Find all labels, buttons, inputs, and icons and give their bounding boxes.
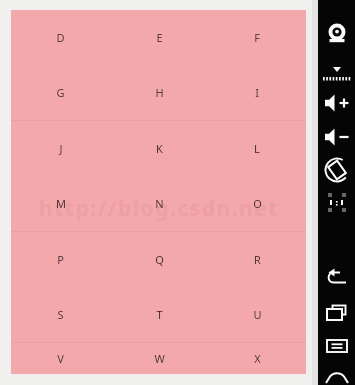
button[interactable]: L (208, 121, 306, 176)
button[interactable]: Volume up (318, 88, 355, 118)
staticText: P (57, 252, 64, 267)
staticText: M (56, 196, 66, 211)
staticText: E (156, 30, 163, 45)
button[interactable]: Volume down (318, 122, 355, 152)
button[interactable]: P (11, 232, 110, 287)
button[interactable]: G (11, 65, 110, 120)
button[interactable]: H (110, 65, 208, 120)
button[interactable]: Back (318, 262, 355, 292)
staticText: F (254, 30, 260, 45)
button[interactable]: V (11, 343, 110, 374)
button[interactable]: R (208, 232, 306, 287)
button[interactable]: D (11, 10, 110, 65)
button[interactable]: W (110, 343, 208, 374)
staticText: U (253, 307, 262, 322)
button[interactable]: X (208, 343, 306, 374)
staticText: N (155, 196, 164, 211)
staticText: S (57, 307, 64, 322)
staticText: K (156, 141, 163, 156)
staticText: J (59, 141, 63, 156)
staticText: D (56, 30, 65, 45)
button[interactable]: M (11, 176, 110, 231)
button[interactable]: E (110, 10, 208, 65)
button[interactable]: Q (110, 232, 208, 287)
button[interactable]: K (110, 121, 208, 176)
staticText: T (156, 307, 163, 322)
button[interactable]: F (208, 10, 306, 65)
staticText: W (154, 351, 165, 366)
button[interactable]: I (208, 65, 306, 120)
button[interactable]: S (11, 287, 110, 342)
staticText: X (254, 351, 261, 366)
button[interactable]: Zoom options (318, 64, 355, 84)
button[interactable]: Rotate (318, 155, 355, 185)
staticText: L (254, 141, 260, 156)
staticText: I (255, 85, 259, 100)
staticText: Q (155, 252, 164, 267)
staticText: G (56, 85, 65, 100)
staticText: H (155, 85, 164, 100)
button[interactable]: J (11, 121, 110, 176)
button[interactable]: U (208, 287, 306, 342)
button[interactable]: Overview (318, 298, 355, 328)
button[interactable]: T (110, 287, 208, 342)
button[interactable]: N (110, 176, 208, 231)
button[interactable]: Menu (318, 331, 355, 361)
staticText: O (253, 196, 262, 211)
staticText: R (254, 252, 261, 267)
button[interactable]: Home (318, 362, 355, 385)
staticText: V (57, 351, 64, 366)
button[interactable]: O (208, 176, 306, 231)
button[interactable]: Camera (318, 18, 355, 48)
staticText: http://blog.csdn.net (39, 194, 279, 223)
